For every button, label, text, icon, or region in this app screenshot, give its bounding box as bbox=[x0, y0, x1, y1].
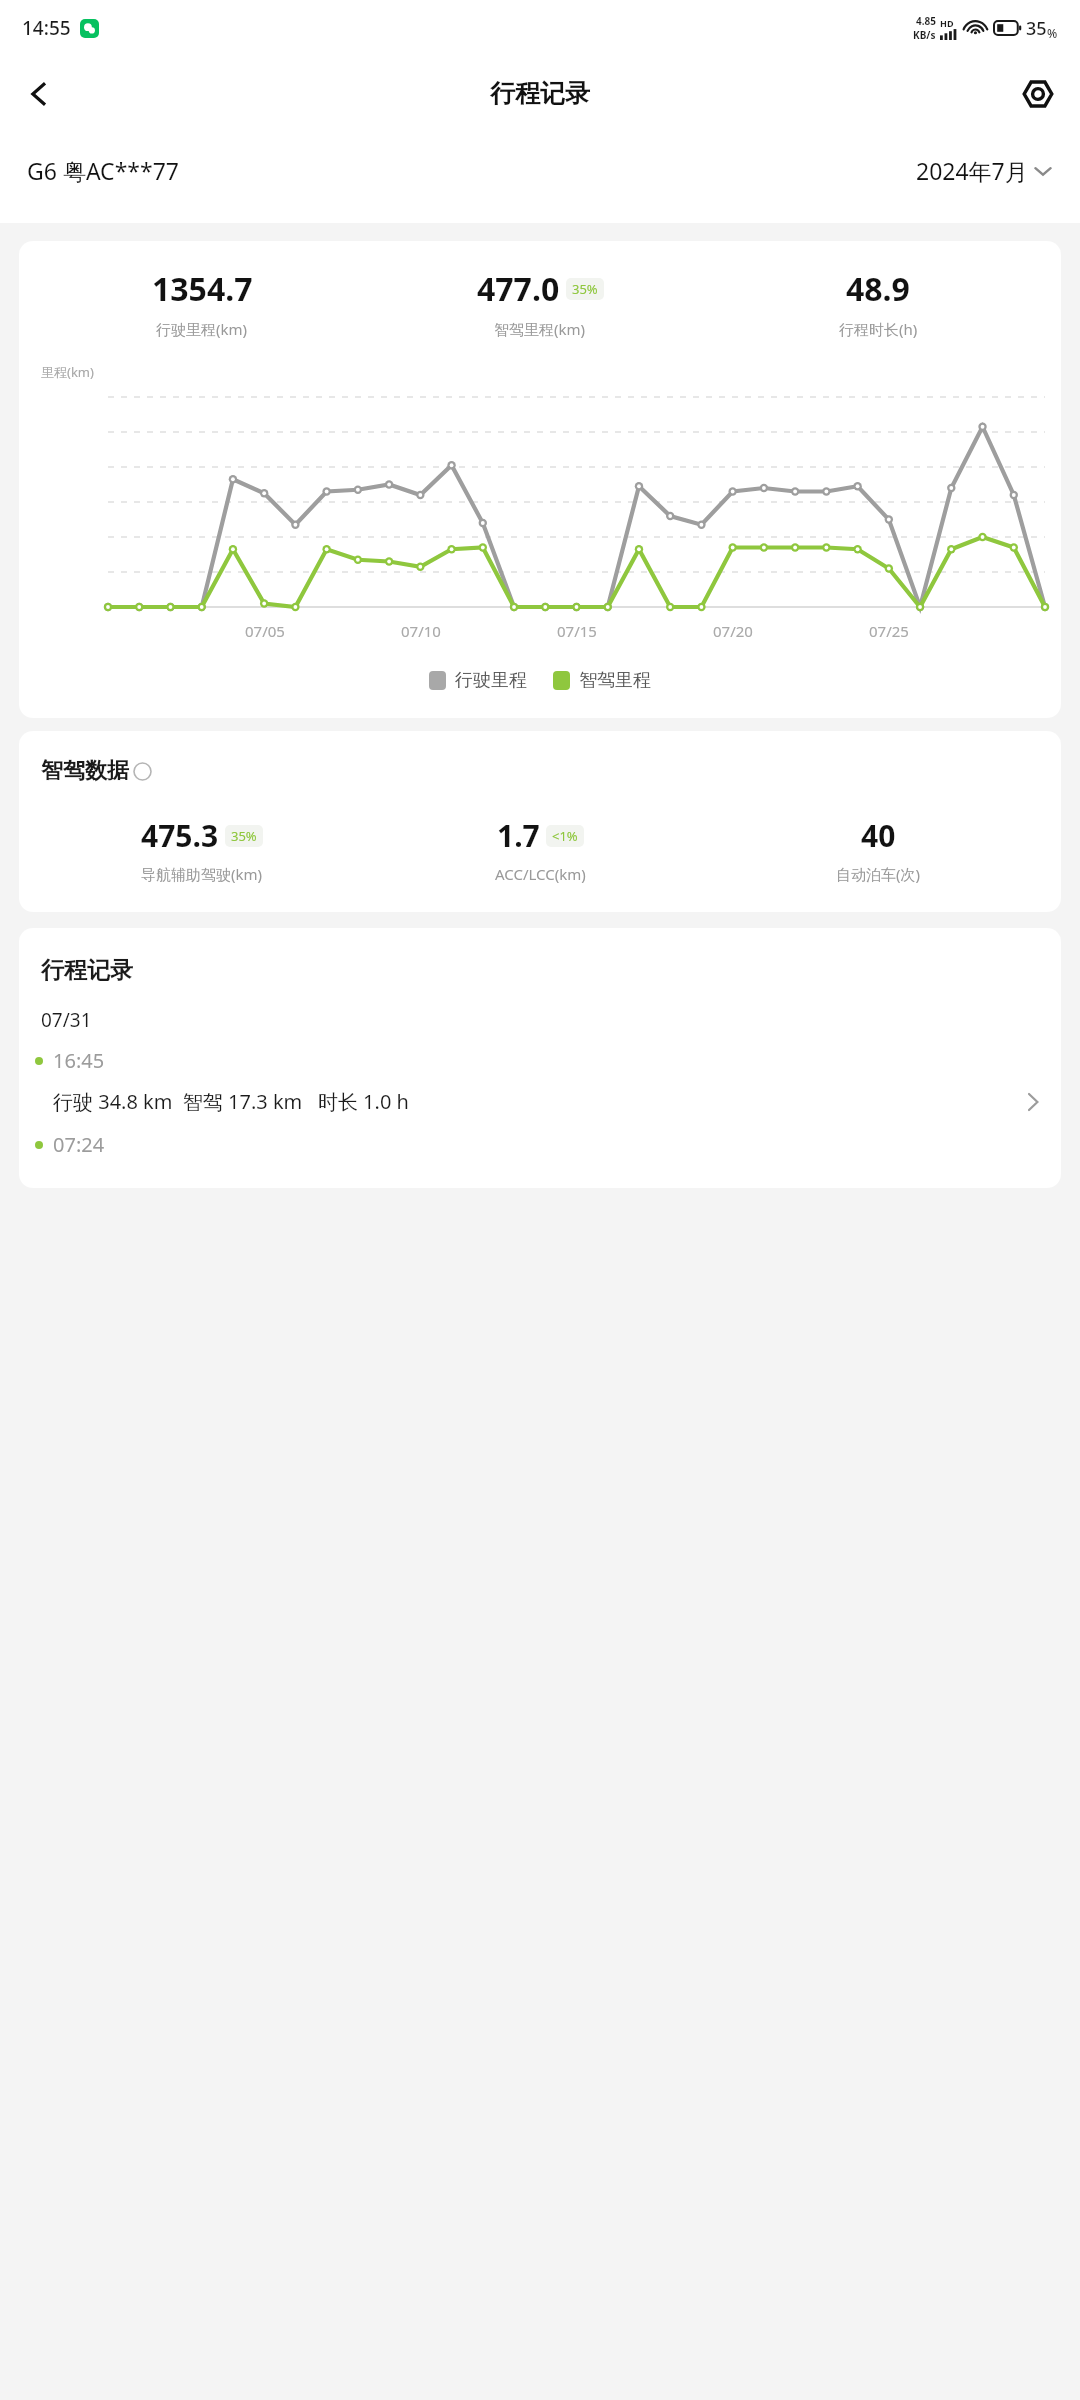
staticText: 1354.7 bbox=[152, 267, 253, 311]
button[interactable]: Settings bbox=[1010, 66, 1066, 122]
staticText: 1.7 bbox=[497, 815, 540, 856]
button[interactable]: Back bbox=[10, 65, 68, 123]
button[interactable]: 2024年7月 bbox=[916, 155, 1053, 186]
staticText: 35% bbox=[572, 280, 598, 298]
button[interactable]: 16:45 bbox=[33, 1047, 1047, 1115]
staticText: 行程记录 bbox=[41, 956, 133, 985]
staticText: G6 粤AC***77 bbox=[27, 155, 179, 186]
staticText: 行驶 34.8 km 智驾 17.3 km 时长 1.0 h bbox=[53, 1088, 409, 1115]
staticText: 07/05 bbox=[245, 621, 285, 641]
staticText: 智驾数据 bbox=[41, 757, 129, 785]
staticText: 07/25 bbox=[869, 621, 909, 641]
staticText: HD bbox=[940, 17, 954, 29]
staticText: 35% bbox=[231, 827, 257, 845]
staticText: 07/20 bbox=[713, 621, 753, 641]
staticText: 07/10 bbox=[401, 621, 441, 641]
staticText: 07:24 bbox=[53, 1131, 105, 1158]
staticText: 477.0 bbox=[477, 267, 560, 311]
staticText: % bbox=[1047, 25, 1058, 41]
button[interactable]: 07:24 bbox=[33, 1131, 1047, 1158]
staticText: 07/15 bbox=[557, 621, 597, 641]
staticText: 07/31 bbox=[41, 1007, 92, 1033]
staticText: <1% bbox=[552, 827, 578, 845]
staticText: 行程记录 bbox=[490, 78, 590, 109]
staticText: 里程(km) bbox=[41, 363, 94, 381]
staticText: 行程时长(h) bbox=[839, 319, 918, 339]
staticText: 475.3 bbox=[141, 815, 219, 856]
staticText: 行驶里程(km) bbox=[156, 319, 248, 339]
staticText: 2024年7月 bbox=[916, 155, 1028, 186]
staticText: 行驶里程 bbox=[455, 669, 527, 692]
staticText: 导航辅助驾驶(km) bbox=[141, 864, 263, 884]
staticText: 35 bbox=[1026, 16, 1047, 41]
staticText: 40 bbox=[861, 815, 896, 856]
staticText: 16:45 bbox=[53, 1047, 105, 1074]
staticText: KB/s bbox=[913, 28, 936, 42]
staticText: 自动泊车(次) bbox=[836, 864, 921, 884]
staticText: 智驾里程(km) bbox=[494, 319, 586, 339]
staticText: 4.85 bbox=[916, 14, 936, 28]
staticText: 智驾里程 bbox=[579, 669, 651, 692]
staticText: 14:55 bbox=[22, 15, 71, 41]
staticText: ACC/LCC(km) bbox=[495, 864, 586, 884]
staticText: 48.9 bbox=[846, 267, 910, 311]
